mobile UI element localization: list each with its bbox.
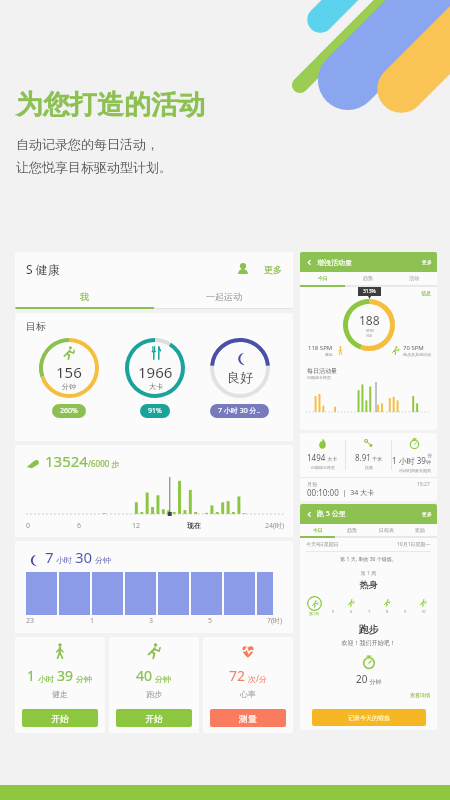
staticText: 1966	[138, 362, 173, 382]
staticText: 24(时)	[265, 521, 285, 531]
staticText: 欢迎！我们开始吧！	[300, 639, 437, 647]
staticText: 7	[45, 547, 54, 567]
staticText: 让您悦享目标驱动型计划。	[16, 159, 172, 175]
staticText: 良好	[227, 369, 253, 385]
staticText: 更多	[422, 511, 432, 517]
staticText: 健走	[52, 689, 68, 699]
staticText: 15:27	[417, 481, 430, 488]
button[interactable]: 1	[15, 637, 105, 733]
staticText: 更多	[422, 259, 432, 265]
button[interactable]: 开始	[116, 709, 192, 727]
button[interactable]: Back	[305, 510, 314, 519]
staticText: 分钟	[74, 673, 93, 684]
staticText: 大卡	[326, 456, 338, 463]
staticText: 13524	[45, 451, 88, 471]
button[interactable]: 156	[26, 337, 112, 418]
staticText: 1494	[307, 452, 326, 463]
staticText: 6	[350, 609, 353, 614]
button[interactable]: 72	[203, 637, 293, 733]
button[interactable]: 日程表	[369, 524, 403, 538]
button[interactable]: 开始	[22, 709, 98, 727]
staticText: 距离	[365, 465, 373, 470]
staticText: 活动时间最长期间	[399, 468, 431, 473]
staticText: 开始	[145, 713, 163, 724]
staticText: 更多	[264, 264, 282, 275]
staticText: 0	[26, 521, 31, 531]
button[interactable]: 一起运动	[154, 286, 293, 309]
staticText: 已燃烧卡路里	[307, 375, 331, 380]
staticText: 为您打造的活动	[16, 88, 205, 122]
staticText: 信息	[421, 290, 431, 296]
staticText: /6000 步	[88, 458, 120, 469]
staticText: 今天4日星期日	[306, 541, 339, 548]
staticText: 跑步	[146, 689, 162, 699]
staticText: 00:10:00	[307, 487, 339, 498]
button[interactable]: 奖励	[403, 524, 437, 538]
staticText: 日程表	[379, 527, 394, 533]
staticText: 30	[75, 547, 93, 567]
staticText: 现在	[187, 521, 201, 530]
staticText: 分钟	[426, 452, 437, 466]
staticText: 小时	[54, 554, 75, 565]
staticText: 23	[26, 616, 35, 626]
staticText: 分钟	[93, 554, 112, 565]
button[interactable]: 查看详情	[410, 692, 430, 698]
button[interactable]: Back	[305, 258, 314, 267]
button[interactable]: 良好	[197, 337, 282, 418]
staticText: 第 1 周	[300, 570, 437, 577]
staticText: S 健康	[26, 261, 60, 277]
staticText: 8	[386, 609, 389, 614]
button[interactable]: 我	[15, 286, 154, 309]
staticText: 分钟	[62, 382, 76, 391]
staticText: 目标	[26, 320, 46, 333]
staticText: 跑步	[300, 623, 437, 636]
button[interactable]: 测量	[210, 709, 286, 727]
staticText: 156	[56, 362, 82, 382]
staticText: 7 小时 30 分..	[218, 406, 261, 416]
staticText: 次/分	[246, 673, 268, 684]
staticText: /60	[366, 333, 373, 338]
staticText: 7(时)	[267, 616, 283, 626]
staticText: 活动	[409, 275, 419, 281]
staticText: 每日活动量	[307, 367, 337, 375]
staticText: 今日	[318, 275, 328, 281]
staticText: 查看详情	[410, 692, 430, 698]
staticText: 健走	[325, 352, 333, 357]
button[interactable]: 更多	[422, 511, 432, 517]
button[interactable]: 40	[109, 637, 199, 733]
staticText: 10月1日星期一	[397, 541, 431, 548]
staticText: 72	[229, 666, 246, 685]
staticText: 测量	[239, 713, 257, 724]
button[interactable]: Profile	[234, 260, 252, 278]
button[interactable]: 更多	[422, 259, 432, 265]
staticText: 10	[421, 609, 426, 614]
staticText: 260%	[60, 406, 78, 416]
staticText: 1 小时 39	[392, 455, 426, 466]
button[interactable]: 趋势	[345, 272, 391, 287]
staticText: 自动记录您的每日活动，	[16, 136, 159, 152]
button[interactable]: 今日	[300, 272, 345, 287]
button[interactable]: 更多	[264, 264, 282, 275]
staticText: 开始	[51, 713, 69, 724]
staticText: 我	[80, 291, 89, 302]
button[interactable]: 活动	[391, 272, 437, 287]
staticText: 188	[359, 312, 380, 328]
staticText: 今日	[313, 527, 323, 533]
staticText: 3	[149, 616, 154, 626]
staticText: 跑步及其他活动	[403, 352, 431, 357]
staticText: 分钟	[153, 673, 172, 684]
button[interactable]: 今日	[300, 524, 335, 538]
button[interactable]: 记录今天的锻炼	[312, 709, 426, 726]
staticText: 月份	[307, 481, 317, 487]
staticText: 8.91	[355, 452, 371, 463]
staticText: 5	[208, 616, 213, 626]
staticText: 40	[136, 666, 153, 685]
staticText: 12	[132, 521, 141, 531]
staticText: 千米	[371, 456, 383, 463]
button[interactable]: 1966	[112, 337, 197, 418]
button[interactable]: 趋势	[335, 524, 369, 538]
staticText: 趋势	[347, 527, 357, 533]
staticText: 20	[356, 672, 368, 686]
staticText: 第 1 天, 剩余 30 个锻炼。	[300, 556, 437, 563]
staticText: 增强活动量	[317, 258, 352, 267]
